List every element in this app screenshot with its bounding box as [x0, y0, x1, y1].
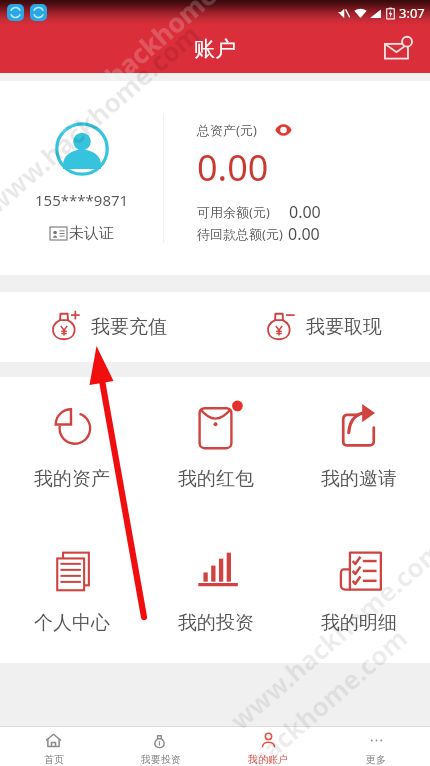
staticText: 我的投资	[178, 611, 254, 635]
staticText: 3:07	[399, 4, 425, 22]
button[interactable]: 我的明细	[287, 521, 430, 635]
staticText: 更多	[366, 753, 386, 766]
button[interactable]: 我的红包	[144, 377, 287, 491]
button[interactable]: 我的邀请	[287, 377, 430, 491]
staticText: 我的明细	[321, 611, 397, 635]
button[interactable]: 更多	[322, 727, 430, 766]
staticText: 首页	[44, 753, 64, 766]
staticText: 我的红包	[178, 467, 254, 491]
button[interactable]: Messages	[376, 26, 422, 72]
staticText: 总资产(元)	[197, 121, 257, 139]
staticText: 0.00	[197, 143, 269, 192]
staticText: 账户	[194, 36, 236, 62]
staticText: 未认证	[69, 224, 114, 243]
staticText: 我要取现	[306, 315, 382, 339]
staticText: www.hackhome.com	[222, 532, 430, 737]
button[interactable]: 我的投资	[144, 521, 287, 635]
staticText: 155****9871	[35, 190, 129, 210]
button[interactable]: 首页	[0, 727, 107, 766]
button[interactable]: 个人中心	[0, 521, 144, 635]
staticText: 个人中心	[34, 611, 110, 635]
staticText: www.hackhome.com	[0, 16, 206, 221]
staticText: 待回款总额(元)	[197, 225, 283, 243]
button[interactable]: 我要取现	[215, 292, 430, 362]
button[interactable]: 我的账户	[214, 727, 322, 766]
staticText: www.hackhome.com	[186, 620, 414, 766]
staticText: 我的账户	[248, 753, 288, 766]
staticText: www.hackhome.com	[42, 0, 270, 141]
staticText: 我要投资	[141, 753, 181, 766]
staticText: 我的邀请	[321, 467, 397, 491]
button[interactable]: 我要充值	[0, 292, 215, 362]
button[interactable]: 我的资产	[0, 377, 144, 491]
button[interactable]: Toggle balance visibility	[273, 120, 293, 140]
staticText: 我的资产	[34, 467, 110, 491]
staticText: 可用余额(元)	[197, 203, 270, 221]
staticText: 0.00	[288, 223, 320, 245]
staticText: 我要充值	[91, 315, 167, 339]
button[interactable]: 我要投资	[107, 727, 214, 766]
staticText: 0.00	[289, 201, 321, 223]
